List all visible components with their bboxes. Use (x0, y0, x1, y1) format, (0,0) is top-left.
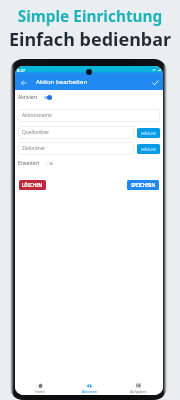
button[interactable]: Quellordner (18, 126, 134, 139)
staticText: Home (35, 389, 46, 394)
button[interactable]: Aktionen (65, 380, 114, 394)
staticText: Aktionsname (22, 112, 52, 119)
staticText: Quellordner (22, 129, 50, 136)
button[interactable]: Home (15, 380, 65, 394)
button[interactable]: SPEICHERN (127, 180, 159, 190)
staticText: SPEICHERN (131, 182, 155, 188)
button[interactable]: Back (17, 76, 30, 89)
staticText: Zielordner (22, 145, 46, 152)
button[interactable]: Aufgaben (114, 380, 163, 394)
staticText: WÄHLEN (141, 131, 156, 136)
staticText: Aufgaben (130, 389, 147, 394)
staticText: WÄHLEN (141, 147, 156, 152)
button[interactable]: LÖSCHEN (19, 180, 46, 190)
button[interactable]: Save (149, 76, 162, 89)
staticText: Simple Einrichtung (0, 6, 180, 27)
staticText: Aktiviert (18, 94, 38, 101)
staticText: Aktion bearbeiten (36, 77, 88, 85)
button[interactable]: Erweitert (18, 158, 163, 168)
staticText: LÖSCHEN (22, 182, 43, 188)
staticText: 8:37 (17, 68, 25, 73)
button[interactable]: WÄHLEN (137, 128, 160, 138)
staticText: Einfach bedienbar (0, 27, 180, 52)
button[interactable]: Zielordner (18, 142, 134, 155)
button[interactable]: WÄHLEN (137, 144, 160, 154)
staticText: Erweitert (18, 160, 40, 167)
button[interactable]: Aktionsname (18, 109, 160, 122)
staticText: Aktionen (82, 389, 98, 394)
button[interactable]: Aktiviert (18, 92, 163, 103)
